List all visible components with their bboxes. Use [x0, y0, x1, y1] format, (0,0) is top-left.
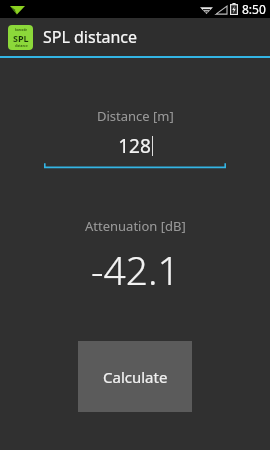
- staticText: Attenuation [dB]: [85, 217, 186, 235]
- staticText: distance: [15, 44, 28, 48]
- staticText: SPL: [13, 32, 29, 44]
- button[interactable]: App icon: [8, 25, 33, 50]
- staticText: Distance [m]: [97, 107, 174, 125]
- staticText: 128: [118, 133, 151, 159]
- staticText: -42.1: [91, 243, 180, 296]
- button[interactable]: Calculate: [78, 341, 192, 412]
- staticText: barcode: [15, 28, 28, 32]
- staticText: SPL distance: [43, 26, 137, 48]
- button[interactable]: 128: [44, 133, 226, 169]
- staticText: 8:50: [242, 1, 266, 17]
- staticText: Calculate: [103, 367, 168, 387]
